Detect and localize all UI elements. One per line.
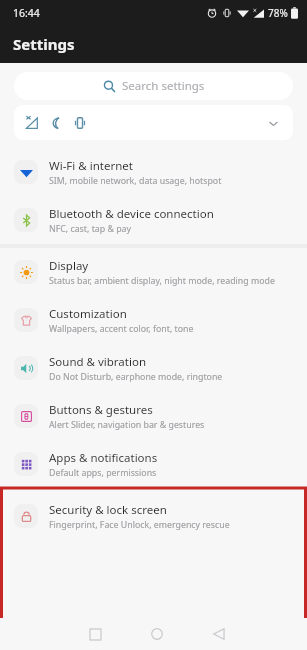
staticText: Security & lock screen (49, 502, 167, 518)
staticText: Bluetooth & device connection (49, 206, 214, 222)
staticText: Sound & vibration (49, 354, 146, 370)
button[interactable]: Wi-Fi & internet (0, 148, 307, 196)
staticText: 16:44 (13, 6, 40, 20)
button[interactable]: Airplane mode (14, 105, 293, 140)
staticText: SIM, mobile network, data usage, hotspot (49, 175, 222, 187)
button[interactable]: Customization (0, 296, 307, 344)
staticText: Settings (13, 34, 75, 54)
staticText: Default apps, permissions (49, 467, 157, 479)
button[interactable]: Recent apps (78, 618, 112, 650)
staticText: Wallpapers, accent color, font, tone (49, 323, 194, 335)
staticText: 78% (268, 6, 288, 20)
staticText: Status bar, ambient display, night mode,… (49, 275, 275, 287)
staticText: Wi-Fi & internet (49, 158, 133, 174)
button[interactable]: Security & lock screen (0, 488, 307, 540)
other: Do not disturb (49, 116, 63, 130)
button[interactable]: Sound & vibration (0, 344, 307, 392)
button[interactable]: Buttons & gestures (0, 392, 307, 440)
button[interactable]: Home (140, 618, 174, 650)
staticText: Display (49, 258, 89, 274)
staticText: Fingerprint, Face Unlock, emergency resc… (49, 519, 230, 531)
button[interactable]: Search settings (14, 72, 293, 100)
button[interactable]: Bluetooth & device connection (0, 196, 307, 244)
staticText: Alert Slider, navigation bar & gestures (49, 419, 205, 431)
staticText: Apps & notifications (49, 450, 158, 466)
button[interactable]: Apps & notifications (0, 440, 307, 488)
staticText: Customization (49, 306, 127, 322)
other: Airplane mode (25, 116, 39, 130)
staticText: Do Not Disturb, earphone mode, ringtone (49, 371, 223, 383)
button[interactable]: Display (0, 248, 307, 296)
other: Vibrate (73, 116, 87, 130)
staticText: NFC, cast, tap & pay (49, 223, 132, 235)
other: Expand (266, 116, 280, 130)
staticText: Buttons & gestures (49, 402, 153, 418)
button[interactable]: Back (202, 618, 236, 650)
staticText: Search settings (122, 78, 205, 94)
